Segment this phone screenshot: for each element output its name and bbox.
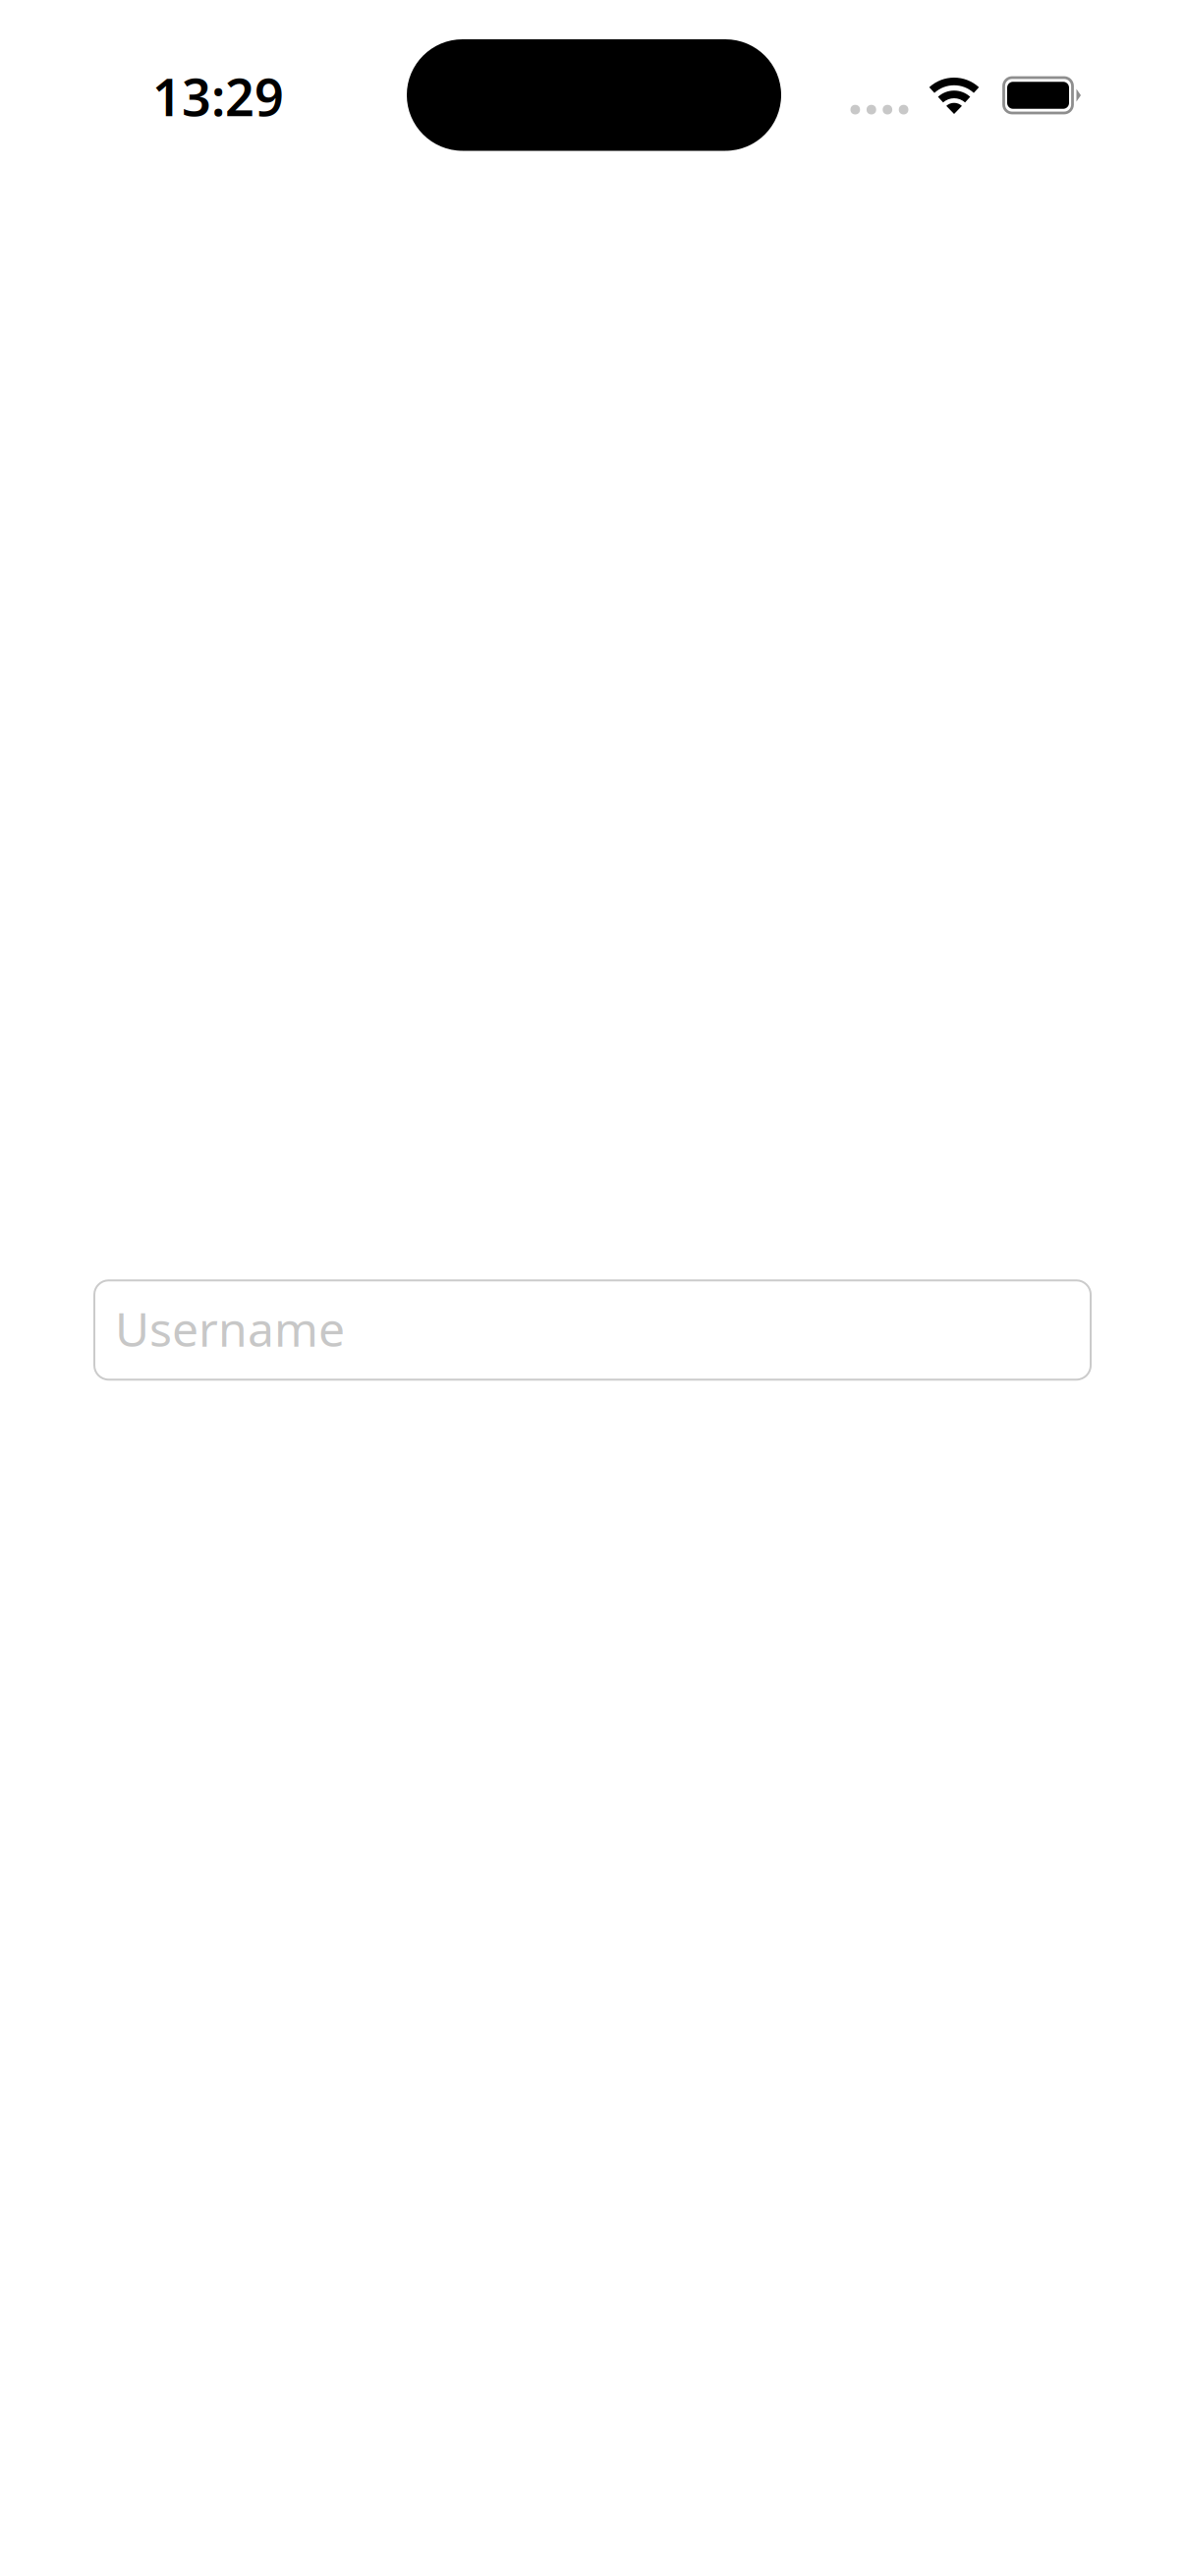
staticText: Username [115, 1297, 345, 1360]
button[interactable]: Username [94, 1280, 1091, 1380]
textField[interactable]: Username [94, 1280, 1091, 1380]
staticText: 13:29 [152, 62, 284, 130]
